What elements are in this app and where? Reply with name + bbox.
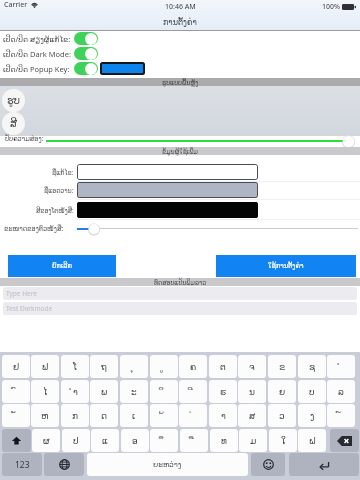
button[interactable]: ມ	[239, 429, 267, 452]
button[interactable]: ່	[179, 404, 207, 427]
button[interactable]: Toggle ເປີດ/ປິດ ສຽງຜູ້ແກ້ໄຂ:	[74, 32, 98, 45]
button[interactable]: ວ	[268, 404, 296, 427]
button[interactable]: ບ	[298, 380, 326, 403]
staticText: ໃຊ້ການຕັ້ງຄ່າ	[268, 262, 304, 270]
staticText: ຟ	[42, 362, 49, 372]
button[interactable]: Backspace	[330, 429, 359, 452]
staticText: ຍົກເລີກ	[52, 262, 72, 270]
button[interactable]: Popup key preview	[100, 62, 145, 75]
staticText: ດ	[101, 411, 108, 421]
button[interactable]: ຈ	[238, 355, 266, 378]
button[interactable]: ຸ	[120, 355, 148, 378]
button[interactable]: Toggle ເປີດ/ປິດ Popup Key:	[74, 62, 98, 75]
button[interactable]: ຍົກເລີກ	[8, 255, 116, 277]
button[interactable]: ໌	[327, 404, 355, 427]
button[interactable]: ທ	[210, 429, 238, 452]
button[interactable]: ໂ	[61, 355, 89, 378]
button[interactable]: ຝ	[298, 429, 326, 452]
button[interactable]: Toggle ເປີດ/ປິດ Dark Mode:	[74, 47, 98, 60]
staticText: Carrier	[4, 0, 28, 10]
staticText: ຢ	[13, 362, 20, 372]
button[interactable]: ຮູບ	[2, 89, 25, 112]
button[interactable]: ີ	[179, 380, 207, 403]
staticText: ຝ	[309, 436, 316, 446]
button[interactable]: Test Darkmode	[3, 302, 357, 315]
button[interactable]: ູ	[150, 355, 178, 378]
button[interactable]: Font size slider	[88, 223, 100, 235]
staticText: ະ	[131, 387, 137, 397]
button[interactable]: ຜ	[32, 429, 60, 452]
button[interactable]: Change keyboard language	[44, 453, 84, 476]
button[interactable]: ໃ	[269, 429, 297, 452]
button[interactable]: ງ	[298, 404, 326, 427]
button[interactable]: ພ	[90, 380, 118, 403]
button[interactable]: ຮ	[209, 380, 237, 403]
staticText: ຍະຫວ່າງ	[153, 460, 182, 469]
button[interactable]: ຊື່ແກ້ໄຂ:	[77, 164, 258, 180]
button[interactable]: ຊື່ແອດວານ:	[77, 182, 258, 198]
button[interactable]: ຫ	[31, 404, 59, 427]
button[interactable]: ິ	[150, 380, 178, 403]
staticText: ຖ	[101, 362, 107, 372]
button[interactable]: ື	[180, 429, 208, 452]
staticText: ຮູບ	[7, 95, 21, 107]
staticText: ການຕັ້ງຄ່າ	[163, 18, 197, 27]
staticText: ໂ	[73, 362, 78, 372]
button[interactable]: Brightness slider	[342, 135, 355, 148]
button[interactable]: ຟ	[31, 355, 59, 378]
button[interactable]: ຖ	[90, 355, 118, 378]
button[interactable]: ຊ	[298, 355, 326, 378]
staticText: ພ	[101, 387, 108, 397]
staticText: ຳ	[73, 387, 78, 397]
button[interactable]: ໍ	[327, 355, 355, 378]
staticText: ໄ	[43, 387, 48, 397]
staticText: ນ	[249, 387, 255, 397]
staticText: ປ	[73, 436, 79, 446]
staticText: 123	[15, 459, 30, 471]
button[interactable]: ສີຂອງໂຕໜັງສື:	[77, 202, 258, 218]
button[interactable]: ກ	[61, 404, 89, 427]
button[interactable]: 123	[2, 453, 42, 476]
button[interactable]: ສີ	[2, 112, 25, 135]
staticText: ມ	[250, 436, 257, 446]
button[interactable]: Shift	[2, 429, 31, 452]
button[interactable]: ຳ	[61, 380, 89, 403]
button[interactable]: ຍ	[268, 380, 296, 403]
button[interactable]: ຄ	[179, 355, 207, 378]
staticText: ເ	[132, 411, 136, 421]
button[interactable]: ປ	[62, 429, 90, 452]
staticText: ທົດສອບແປ້ນພິມລາວ	[154, 279, 207, 286]
button[interactable]: ເ	[120, 404, 148, 427]
staticText: ສີ	[10, 118, 18, 130]
button[interactable]: ຂ	[268, 355, 296, 378]
button[interactable]: ຍະຫວ່າງ	[87, 453, 248, 476]
staticText: ແ	[102, 436, 108, 446]
button[interactable]: າ	[209, 404, 237, 427]
button[interactable]: ໄ	[31, 380, 59, 403]
staticText: ຮູບແບບພື້ນຫຼັງ	[162, 79, 199, 86]
button[interactable]: Type Here	[3, 287, 357, 300]
staticText: ຄ	[190, 362, 197, 372]
button[interactable]: ແ	[91, 429, 119, 452]
button[interactable]: ຶ	[150, 429, 178, 452]
staticText: ຂໍ້ມູນຜູ້ໃຊ້ເພີ່ມ	[162, 148, 198, 155]
button[interactable]: ລ	[327, 380, 355, 403]
button[interactable]: Emoji	[251, 453, 285, 476]
button[interactable]: ສ	[238, 404, 266, 427]
staticText: ຮ	[220, 387, 227, 397]
button[interactable]: ນ	[238, 380, 266, 403]
button[interactable]: ັ	[2, 404, 30, 427]
staticText: ໃ	[281, 436, 286, 446]
button[interactable]: ້	[150, 404, 178, 427]
button[interactable]: ອ	[121, 429, 149, 452]
button[interactable]: ະ	[120, 380, 148, 403]
button[interactable]: ຢ	[2, 355, 30, 378]
staticText: 100%	[322, 2, 340, 12]
staticText: Type Here	[6, 289, 37, 298]
button[interactable]: Return	[289, 453, 359, 476]
button[interactable]: ົ	[2, 380, 30, 403]
staticText: ກ	[72, 411, 79, 421]
button[interactable]: ໃຊ້ການຕັ້ງຄ່າ	[216, 255, 356, 277]
button[interactable]: ດ	[90, 404, 118, 427]
button[interactable]: ຕ	[209, 355, 237, 378]
